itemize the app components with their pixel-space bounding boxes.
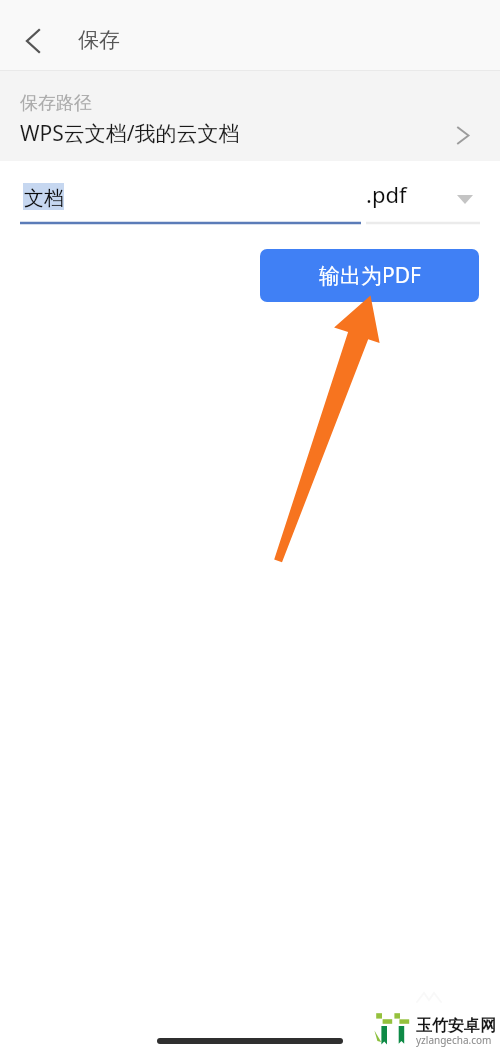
staticText: 保存 (78, 27, 120, 53)
staticText: .pdf (366, 179, 407, 209)
button[interactable]: Back (9, 16, 57, 56)
staticText: 文档 (24, 186, 64, 211)
staticText: 输出为PDF (319, 261, 421, 290)
staticText: 保存路径 (20, 92, 92, 115)
staticText: yzlangecha.com (416, 1033, 492, 1047)
button[interactable]: 输出为PDF (260, 249, 479, 302)
button[interactable]: 文档 (20, 176, 361, 224)
button[interactable]: Choose file format (448, 182, 482, 216)
staticText: 玉竹安卓网 (416, 1016, 496, 1036)
button[interactable]: 保存路径 (0, 71, 500, 161)
staticText: WPS云文档/我的云文档 (20, 119, 240, 148)
